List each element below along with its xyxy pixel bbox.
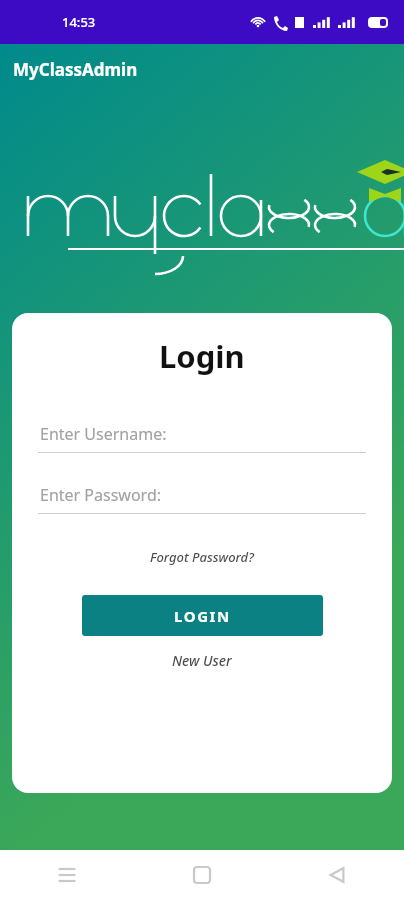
staticText: Enter Username: bbox=[40, 423, 167, 445]
button[interactable]: New User bbox=[12, 651, 392, 670]
staticText: Enter Password: bbox=[40, 484, 162, 506]
button[interactable]: LOGIN bbox=[82, 595, 323, 636]
button[interactable]: Back bbox=[269, 850, 404, 900]
staticText: Login bbox=[159, 335, 245, 377]
staticText: Forgot Password? bbox=[150, 548, 254, 566]
button[interactable]: Enter Password: bbox=[38, 484, 366, 514]
staticText: MyClassAdmin bbox=[13, 58, 138, 81]
button[interactable]: Menu bbox=[0, 850, 134, 900]
staticText: 14:53 bbox=[62, 13, 96, 31]
staticText: LOGIN bbox=[174, 606, 231, 626]
button[interactable]: Home bbox=[134, 850, 269, 900]
button[interactable]: Forgot Password? bbox=[12, 548, 392, 566]
staticText: New User bbox=[172, 651, 232, 670]
button[interactable]: Enter Username: bbox=[38, 423, 366, 453]
